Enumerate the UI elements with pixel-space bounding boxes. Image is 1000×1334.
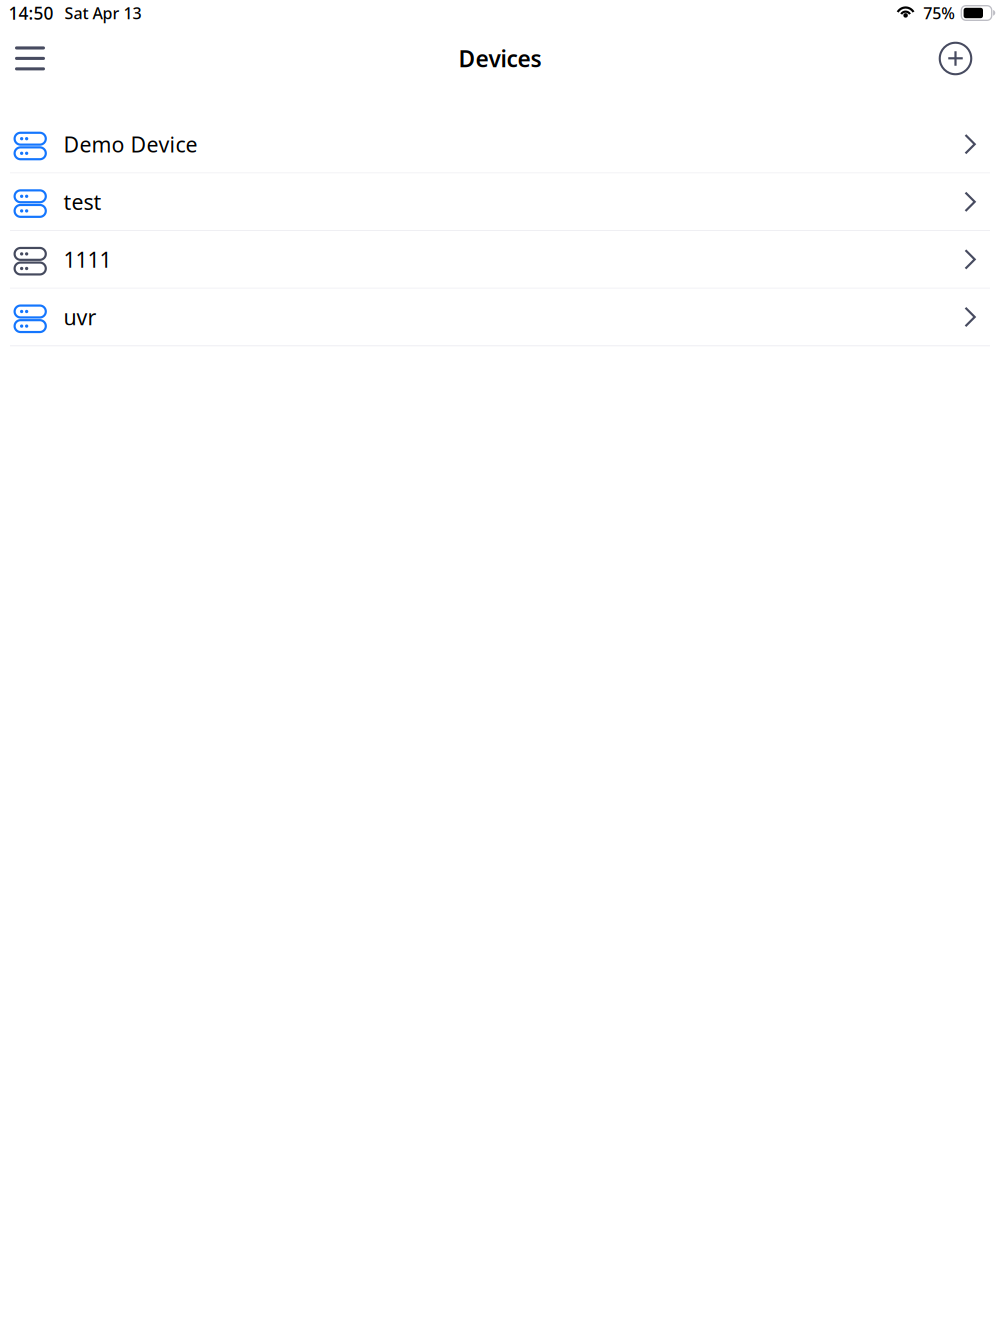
- button[interactable]: Menu: [0, 32, 60, 85]
- button[interactable]: Demo Device: [0, 116, 1000, 173]
- button[interactable]: uvr: [0, 289, 1000, 346]
- staticText: test: [63, 188, 101, 216]
- staticText: 14:50: [8, 1, 53, 24]
- staticText: Devices: [458, 43, 541, 73]
- button[interactable]: Add device: [927, 32, 1000, 85]
- button[interactable]: 1111: [0, 231, 1000, 289]
- staticText: 75%: [923, 2, 955, 24]
- staticText: Sat Apr 13: [64, 2, 141, 24]
- staticText: uvr: [63, 303, 96, 331]
- staticText: 1111: [63, 245, 111, 273]
- button[interactable]: test: [0, 173, 1000, 231]
- staticText: Demo Device: [63, 130, 197, 158]
